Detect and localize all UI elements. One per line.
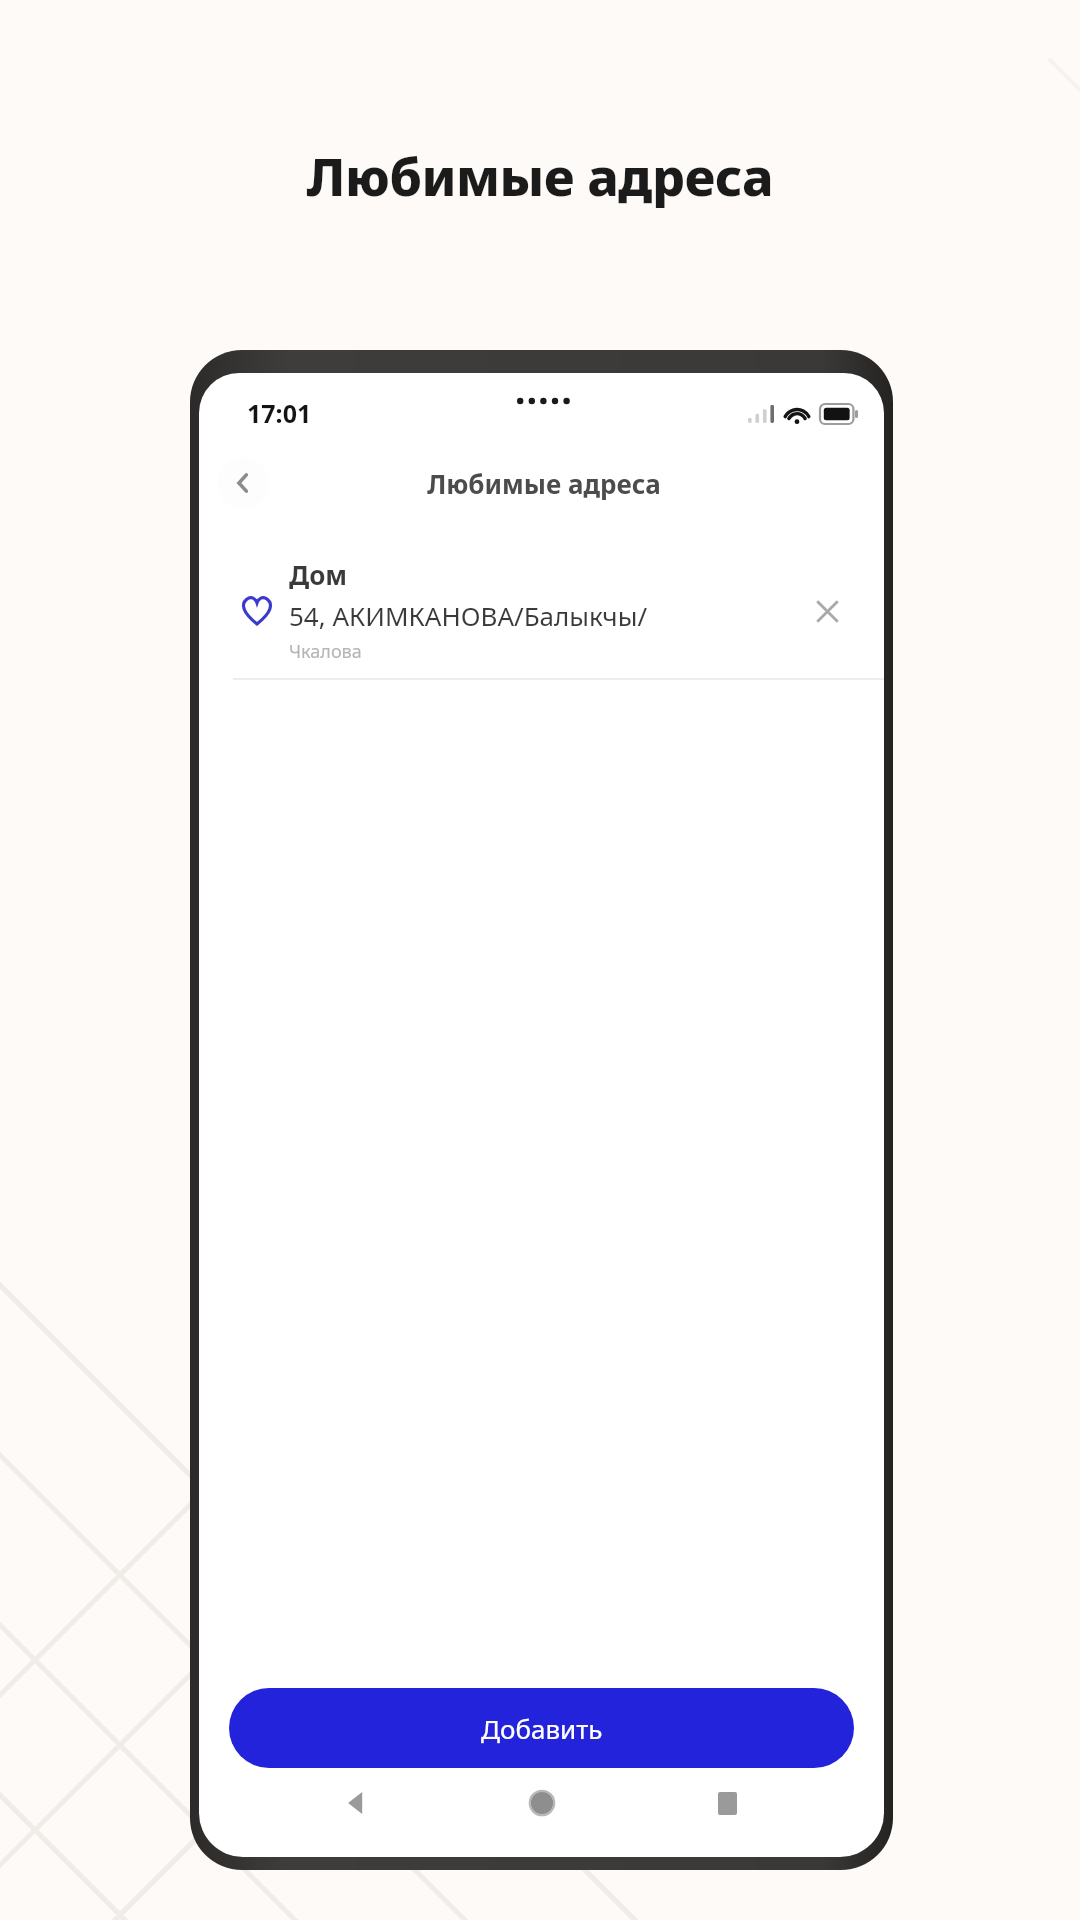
staticText: Добавить [481,1711,603,1746]
button[interactable]: Recents [699,1775,755,1831]
staticText: Чкалова [289,639,362,664]
button[interactable]: Добавить [229,1688,854,1768]
button[interactable]: Home [514,1775,570,1831]
staticText: Дом [289,557,348,592]
button[interactable]: Дом [199,543,884,680]
staticText: Любимые адреса [427,466,661,501]
staticText: 17:01 [247,396,312,430]
button[interactable]: Back [328,1775,384,1831]
button[interactable]: Удалить [800,584,854,638]
button[interactable]: Назад [217,457,269,509]
staticText: 54, АКИМКАНОВА/Балыкчы/ [289,598,648,633]
staticText: Любимые адреса [0,140,1080,211]
